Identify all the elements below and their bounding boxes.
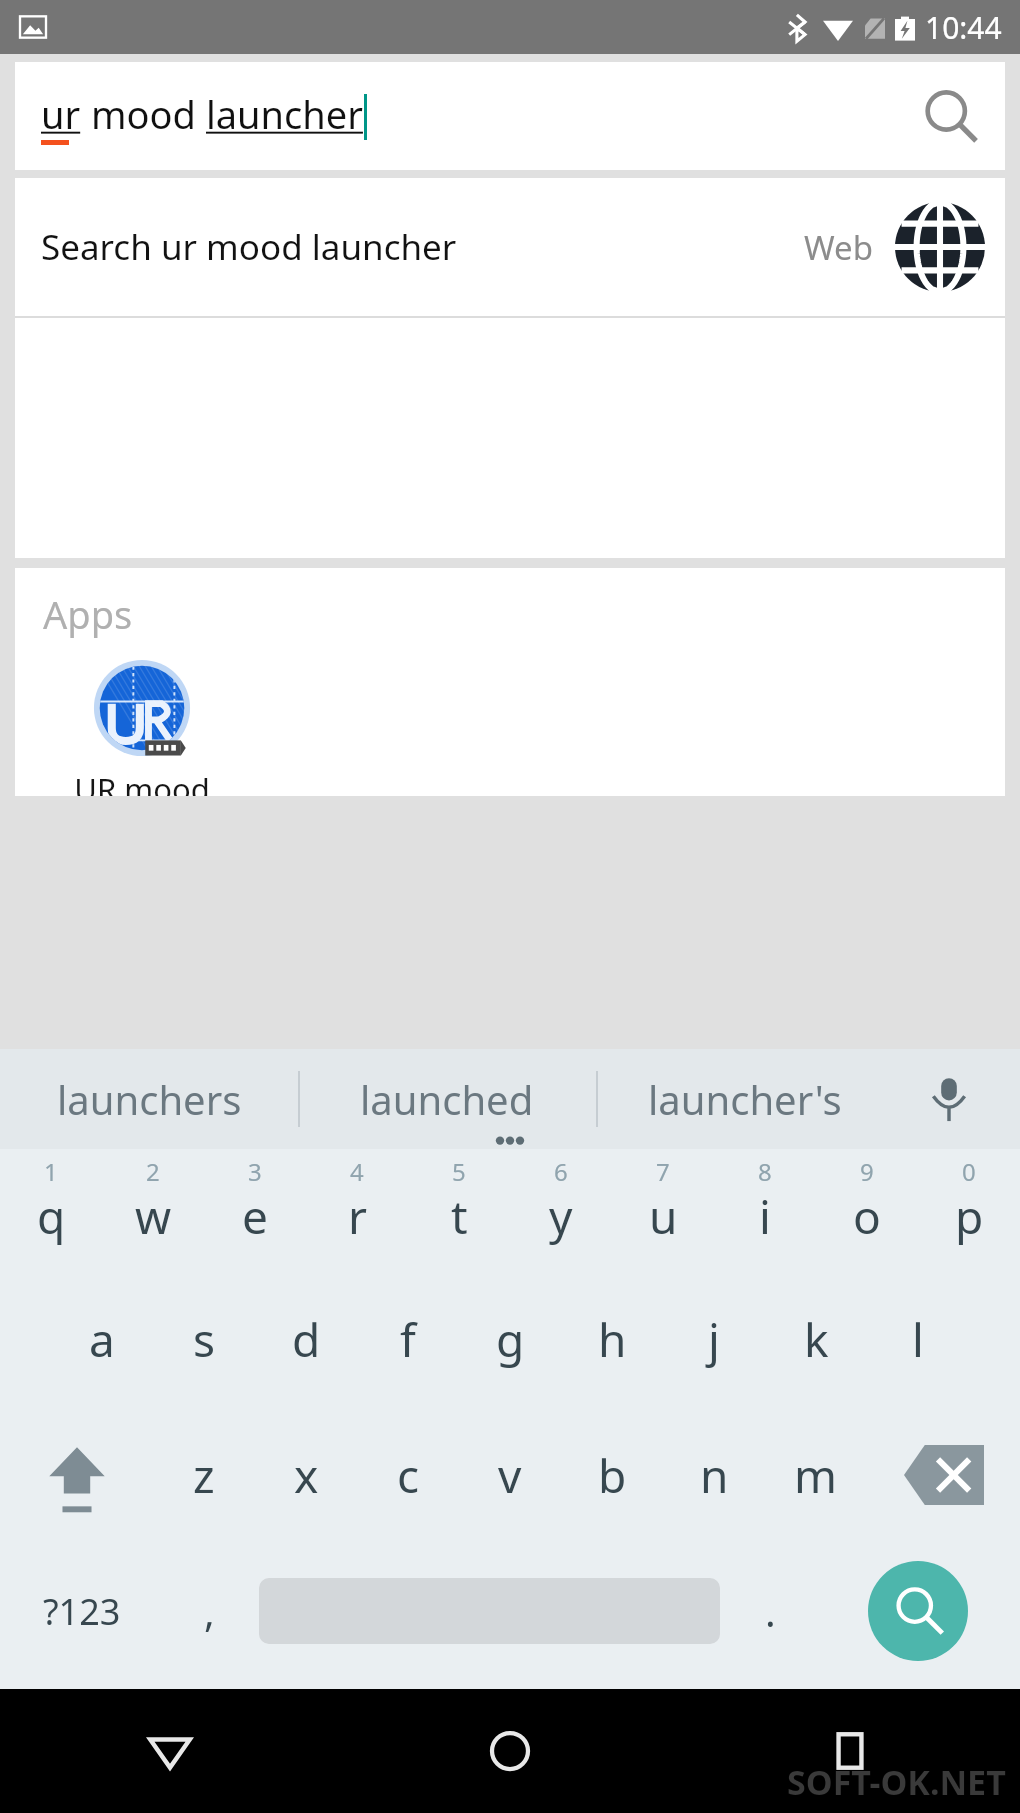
staticText: 0	[962, 1155, 976, 1188]
button[interactable]: UR mood l...	[57, 654, 227, 796]
button[interactable]: m	[765, 1407, 867, 1543]
button[interactable]: ,	[163, 1543, 255, 1679]
button[interactable]: v	[459, 1407, 561, 1543]
staticText: 2	[146, 1155, 160, 1188]
staticText: c	[397, 1444, 420, 1507]
staticText: t	[451, 1185, 468, 1248]
staticText: 8	[758, 1155, 772, 1188]
staticText: p	[955, 1185, 984, 1248]
button[interactable]: l	[867, 1271, 969, 1407]
staticText: 3	[248, 1155, 262, 1188]
button[interactable]: 3	[204, 1149, 306, 1271]
button[interactable]: j	[663, 1271, 765, 1407]
button[interactable]: Voice input	[894, 1049, 1004, 1149]
button[interactable]: Shift	[0, 1407, 153, 1543]
button[interactable]: z	[153, 1407, 255, 1543]
button[interactable]: ?123	[0, 1543, 163, 1679]
button[interactable]: Search ur mood launcher	[15, 178, 1005, 316]
button[interactable]: launcher's	[596, 1049, 894, 1149]
button[interactable]: Recents	[680, 1689, 1020, 1813]
staticText: q	[37, 1185, 66, 1248]
button[interactable]: Search	[919, 85, 981, 147]
staticText: mood	[81, 88, 206, 140]
staticText: u	[649, 1185, 678, 1248]
button[interactable]: 5	[408, 1149, 510, 1271]
staticText: launcher	[206, 88, 363, 140]
staticText: j	[708, 1308, 720, 1371]
staticText: ur	[41, 88, 81, 140]
staticText: l	[912, 1308, 924, 1371]
staticText: s	[193, 1308, 216, 1371]
button[interactable]: 6	[510, 1149, 612, 1271]
staticText: e	[242, 1185, 268, 1248]
button[interactable]: d	[255, 1271, 357, 1407]
staticText: ?123	[43, 1587, 121, 1636]
button[interactable]: 9	[816, 1149, 918, 1271]
staticText: h	[598, 1308, 627, 1371]
button[interactable]: launchers	[0, 1049, 298, 1149]
button[interactable]: 4	[306, 1149, 408, 1271]
staticText: y	[549, 1185, 573, 1248]
staticText: r	[348, 1185, 367, 1248]
staticText: launcher's	[648, 1072, 842, 1126]
button[interactable]: f	[357, 1271, 459, 1407]
staticText: Apps	[43, 588, 133, 640]
staticText: .	[765, 1584, 776, 1638]
staticText: g	[496, 1308, 525, 1371]
button[interactable]: Back	[0, 1689, 340, 1813]
staticText: launched	[360, 1072, 534, 1126]
staticText: d	[292, 1308, 321, 1371]
staticText: 10:44	[925, 7, 1002, 48]
button[interactable]: x	[255, 1407, 357, 1543]
button[interactable]: Home	[340, 1689, 680, 1813]
button[interactable]: c	[357, 1407, 459, 1543]
staticText: 1	[44, 1155, 58, 1188]
staticText: k	[804, 1308, 829, 1371]
button[interactable]: s	[153, 1271, 255, 1407]
button[interactable]: 7	[612, 1149, 714, 1271]
staticText: UR mood l...	[57, 768, 227, 796]
staticText: n	[700, 1444, 729, 1507]
staticText: Search ur mood launcher	[41, 223, 457, 271]
staticText: i	[759, 1185, 771, 1248]
staticText: b	[598, 1444, 627, 1507]
staticText: m	[794, 1444, 838, 1507]
staticText: 6	[554, 1155, 568, 1188]
button[interactable]: g	[459, 1271, 561, 1407]
staticText: x	[294, 1444, 319, 1507]
button[interactable]: 2	[102, 1149, 204, 1271]
staticText: a	[89, 1308, 115, 1371]
staticText: v	[498, 1444, 522, 1507]
button[interactable]: .	[724, 1543, 816, 1679]
button[interactable]: n	[663, 1407, 765, 1543]
staticText: 9	[860, 1155, 874, 1188]
staticText: o	[853, 1185, 881, 1248]
staticText: Web	[804, 225, 873, 270]
button[interactable]: h	[561, 1271, 663, 1407]
button[interactable]: b	[561, 1407, 663, 1543]
staticText: 4	[350, 1155, 364, 1188]
button[interactable]: launched	[298, 1049, 596, 1149]
button[interactable]: Search	[868, 1561, 968, 1661]
button[interactable]: a	[51, 1271, 153, 1407]
button[interactable]: 0	[918, 1149, 1020, 1271]
button[interactable]: 1	[0, 1149, 102, 1271]
button[interactable]: 8	[714, 1149, 816, 1271]
staticText: z	[193, 1444, 215, 1507]
button[interactable]: Backspace	[867, 1407, 1020, 1543]
staticText: f	[400, 1308, 416, 1371]
staticText: 7	[656, 1155, 670, 1188]
button[interactable]: ur	[15, 62, 1005, 170]
staticText: 5	[452, 1155, 466, 1188]
staticText: w	[135, 1185, 172, 1248]
button[interactable]: k	[765, 1271, 867, 1407]
staticText: ,	[204, 1584, 215, 1638]
staticText: launchers	[57, 1072, 242, 1126]
staticText: SOFT-OK.NET	[787, 1759, 1006, 1805]
